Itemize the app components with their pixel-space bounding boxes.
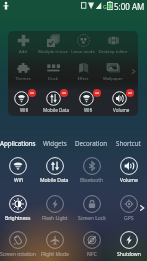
staticText: Desktop editor <box>98 49 128 55</box>
staticText: Volume <box>113 107 130 113</box>
button[interactable]: Themes <box>8 58 38 85</box>
button[interactable]: Wifi <box>72 85 105 116</box>
staticText: Bluetooth <box>80 177 104 184</box>
staticText: Shutdown <box>117 251 141 258</box>
staticText: Wallpaper <box>103 76 123 82</box>
staticText: Applications <box>0 139 36 147</box>
staticText: Mobile Data <box>40 177 69 184</box>
button[interactable]: Shutdown <box>110 227 147 261</box>
button[interactable]: Desktop editor <box>98 31 128 58</box>
staticText: Wifi <box>14 177 23 184</box>
button[interactable]: Decoration <box>73 136 110 150</box>
staticText: Flash Light <box>42 215 68 222</box>
staticText: NFC <box>87 251 97 258</box>
button[interactable]: Flash Light <box>36 189 73 227</box>
staticText: Shortcut <box>116 139 141 147</box>
staticText: Lasso mode <box>71 49 95 55</box>
staticText: 5:00 AM <box>114 1 145 12</box>
button[interactable]: Bluetooth <box>73 151 110 189</box>
button[interactable]: Add <box>8 31 38 58</box>
button[interactable]: Effect <box>68 58 98 85</box>
button[interactable]: Shortcut <box>110 136 147 150</box>
staticText: Brightness <box>5 215 31 222</box>
staticText: Volume <box>120 177 138 184</box>
staticText: Wifi <box>20 107 29 113</box>
staticText: Wifi <box>84 107 93 113</box>
button[interactable]: Brightness <box>0 189 36 227</box>
button[interactable]: More <box>128 58 138 85</box>
button[interactable]: Dock <box>38 58 68 85</box>
button[interactable]: Wifi <box>8 85 40 116</box>
staticText: Screen rotation <box>0 251 36 258</box>
button[interactable]: NFC <box>73 227 110 261</box>
staticText: Widgets <box>43 139 67 147</box>
button[interactable]: Mobile Data <box>40 85 72 116</box>
button[interactable]: Volume <box>105 85 138 116</box>
staticText: GPS <box>124 215 134 222</box>
button[interactable]: Flight Mode <box>36 227 73 261</box>
staticText: Mobile Data <box>43 107 70 113</box>
staticText: Multiple choice <box>38 49 68 55</box>
staticText: Effect <box>77 76 89 82</box>
staticText: Flight Mode <box>41 251 69 258</box>
button[interactable]: Volume <box>110 151 147 189</box>
staticText: Dock <box>48 76 58 82</box>
button[interactable]: Screen Lock <box>73 189 110 227</box>
staticText: Add <box>19 49 27 55</box>
button[interactable]: Widgets <box>36 136 73 150</box>
button[interactable]: GPS <box>110 189 147 227</box>
staticText: Decoration <box>75 139 108 147</box>
button[interactable]: More toggles <box>137 189 147 227</box>
button[interactable]: Mobile Data <box>36 151 73 189</box>
button[interactable]: Applications <box>0 136 36 150</box>
button[interactable]: Wallpaper <box>98 58 128 85</box>
staticText: Screen Lock <box>78 215 106 222</box>
button[interactable]: Lasso mode <box>68 31 98 58</box>
button[interactable]: Multiple choice <box>38 31 68 58</box>
button[interactable]: Screen rotation <box>0 227 36 261</box>
staticText: Themes <box>15 76 31 82</box>
button[interactable]: Wifi <box>0 151 36 189</box>
staticText: GFA <box>103 3 113 10</box>
